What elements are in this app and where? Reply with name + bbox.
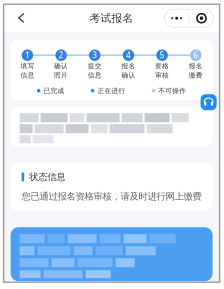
staticText: 报名 — [121, 62, 135, 70]
staticText: 报名 — [189, 62, 203, 70]
staticText: 4 — [126, 50, 131, 60]
staticText: 资格 — [155, 62, 169, 70]
button[interactable]: 客服 — [201, 94, 217, 110]
staticText: 信息 — [20, 71, 34, 79]
staticText: 填写 — [20, 62, 34, 70]
staticText: 正在进行 — [97, 87, 125, 95]
staticText: 考试报名 — [90, 12, 134, 25]
staticText: 提交 — [88, 62, 102, 70]
staticText: 不可操作 — [158, 87, 186, 95]
button[interactable]: 返回 — [11, 5, 33, 31]
button[interactable] — [11, 227, 213, 281]
button[interactable]: 更多 — [165, 9, 214, 27]
staticText: 审核 — [155, 71, 169, 79]
staticText: 您已通过报名资格审核，请及时进行网上缴费 — [22, 191, 202, 202]
staticText: 5 — [160, 50, 165, 60]
staticText: 1 — [25, 50, 30, 60]
staticText: 已完成 — [43, 87, 64, 95]
staticText: 确认 — [54, 62, 68, 70]
staticText: 照片 — [54, 71, 68, 79]
staticText: 3 — [92, 50, 97, 60]
staticText: 2 — [59, 50, 64, 60]
staticText: 状态信息 — [29, 171, 65, 183]
staticText: 6 — [193, 50, 198, 60]
staticText: 信息 — [88, 71, 102, 79]
staticText: 确认 — [121, 71, 135, 79]
staticText: 缴费 — [189, 71, 203, 79]
